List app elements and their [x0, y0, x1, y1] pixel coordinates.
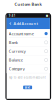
- staticText: Bank: [9, 40, 18, 45]
- staticText: Currency: [9, 48, 26, 54]
- staticText: Tap to add a custom account: [9, 76, 46, 79]
- button[interactable]: Back: [9, 22, 12, 25]
- staticText: Category: [9, 66, 25, 71]
- staticText: ▮▮: [46, 14, 48, 17]
- staticText: Add Account: [14, 21, 39, 26]
- staticText: Account name: [9, 31, 34, 36]
- button[interactable]: Balance: [7, 56, 50, 64]
- staticText: Custom Bank: [14, 1, 41, 7]
- staticText: Balance: [9, 57, 23, 63]
- button[interactable]: Custom Bank: [0, 2, 56, 7]
- staticText: 9:41: [9, 14, 16, 17]
- button[interactable]: Category: [7, 64, 50, 73]
- button[interactable]: Currency: [7, 47, 50, 56]
- button[interactable]: Bank: [7, 38, 50, 47]
- button[interactable]: Account name: [7, 29, 50, 38]
- button[interactable]: Save: [23, 86, 32, 89]
- staticText: Save: [25, 86, 31, 89]
